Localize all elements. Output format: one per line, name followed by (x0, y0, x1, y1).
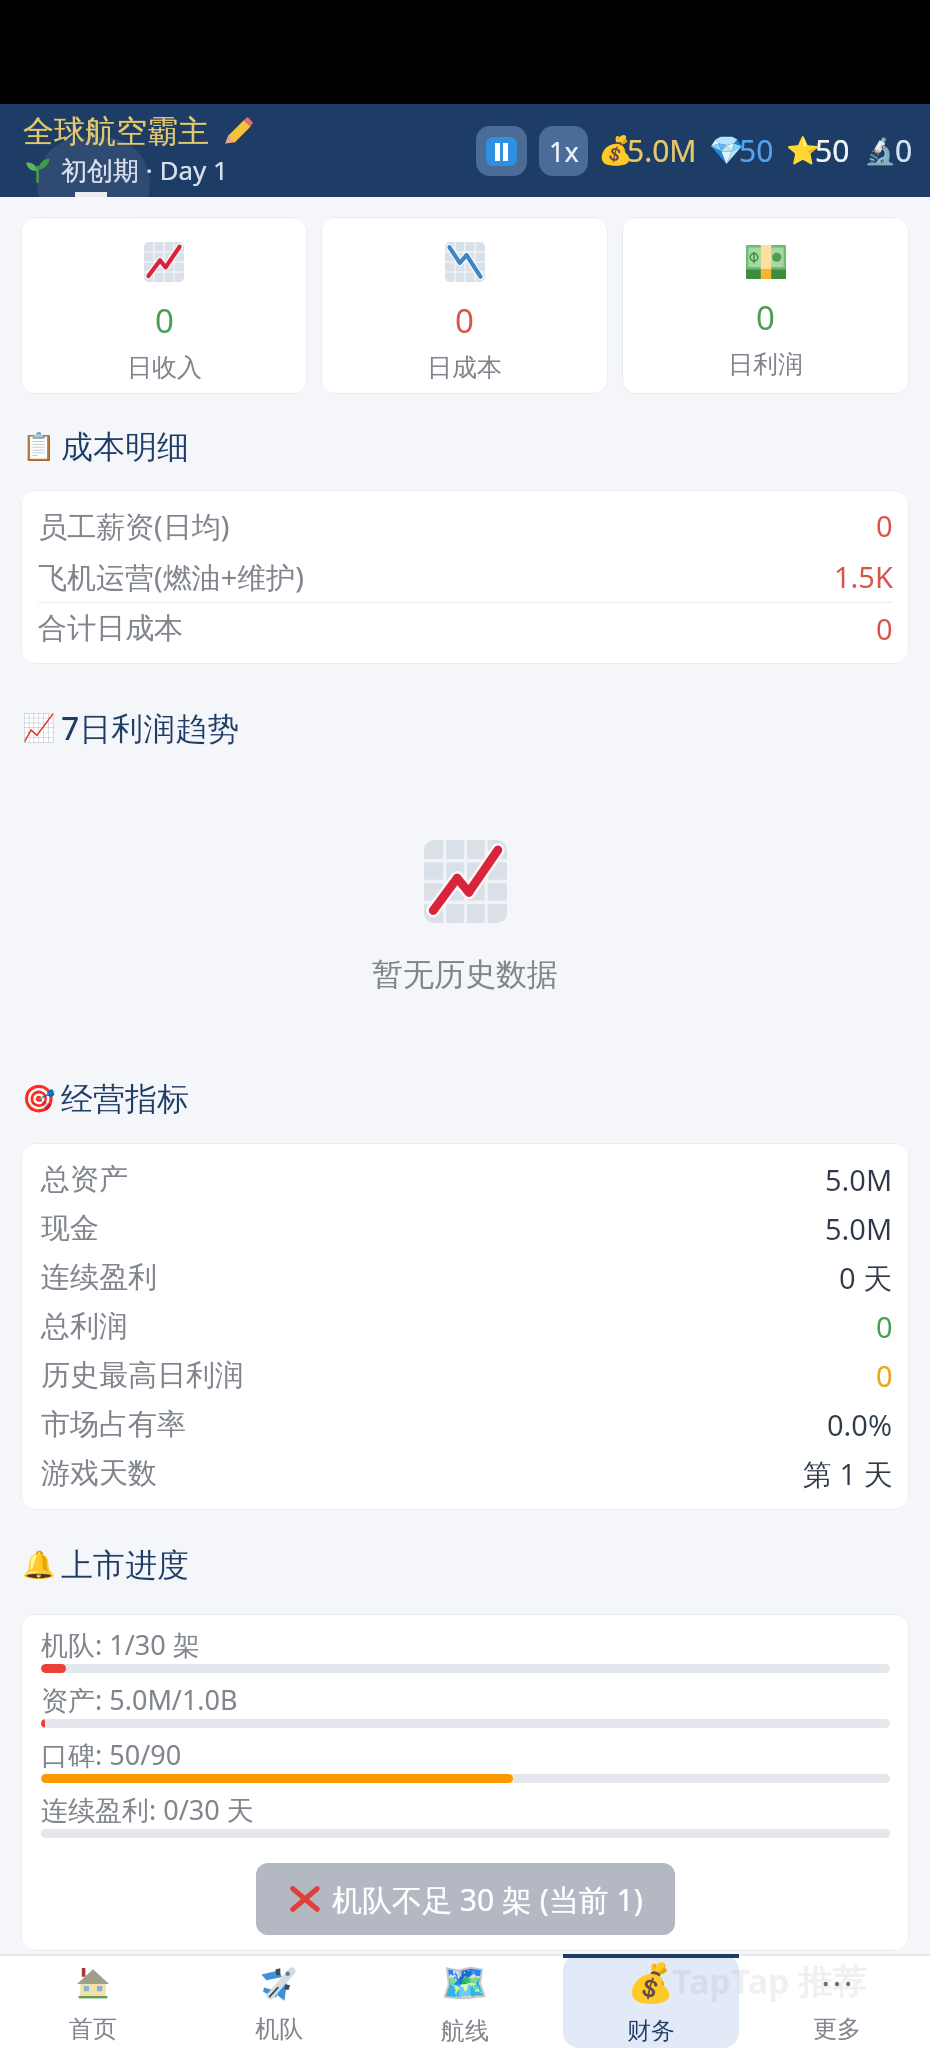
staticText: 首页 (69, 2014, 117, 2044)
staticText: 💰 (627, 1961, 675, 2006)
staticText: 飞机运营(燃油+维护) (38, 557, 304, 597)
staticText: 0 (876, 506, 893, 545)
button[interactable]: 更多 (744, 1954, 930, 2048)
staticText: 暂无历史数据 (372, 955, 558, 994)
staticText: 市场占有率 (41, 1406, 186, 1443)
button[interactable]: 💰 (558, 1954, 744, 2048)
staticText: 0 天 (839, 1258, 893, 1298)
staticText: 更多 (813, 2014, 861, 2044)
staticText: TapTap 推荐 (672, 1958, 867, 2004)
staticText: 7日利润趋势 (61, 706, 240, 750)
staticText: 总利润 (41, 1308, 128, 1345)
staticText: 0 (756, 295, 775, 340)
staticText: 5.0M (825, 1160, 893, 1199)
button[interactable]: 机队 (186, 1954, 372, 2048)
button[interactable]: 首页 (0, 1954, 186, 2048)
staticText: 资产: 5.0M/1.0B (41, 1681, 238, 1718)
staticText: 0.0% (827, 1405, 893, 1444)
button[interactable]: 0 (622, 217, 909, 394)
staticText: 0 (895, 130, 913, 171)
staticText: 现金 (41, 1210, 99, 1247)
staticText: 🔬 (864, 136, 888, 166)
staticText: 📈 (22, 712, 50, 744)
button[interactable]: 🗺 (372, 1954, 558, 2048)
staticText: 0 (876, 1356, 893, 1395)
staticText: 日利润 (728, 349, 803, 380)
button[interactable]: Pause (476, 126, 527, 176)
button[interactable]: 机队不足 30 架 (当前 1) (256, 1863, 675, 1935)
staticText: 成本明细 (61, 427, 189, 467)
staticText: 💰 (598, 134, 624, 167)
staticText: 历史最高日利润 (41, 1357, 244, 1394)
staticText: 游戏天数 (41, 1455, 157, 1492)
staticText: 5.0M (825, 1209, 893, 1248)
staticText: 🗺 (441, 1961, 489, 2006)
staticText: 机队: 1/30 架 (41, 1626, 200, 1663)
staticText: 日收入 (127, 352, 202, 383)
staticText: 🔔 (22, 1549, 50, 1581)
staticText: 0 (876, 609, 893, 648)
staticText: 上市进度 (61, 1545, 189, 1585)
staticText: 航线 (441, 2016, 489, 2046)
staticText: 0 (876, 1307, 893, 1346)
staticText: 全球航空霸主 (23, 112, 209, 151)
staticText: 连续盈利: 0/30 天 (41, 1791, 254, 1828)
staticText: 日成本 (427, 352, 502, 383)
staticText: 0 (455, 298, 474, 343)
staticText: 1x (549, 133, 579, 170)
staticText: 机队不足 30 架 (当前 1) (332, 1879, 643, 1920)
staticText: 1.5K (834, 557, 893, 596)
staticText: 50 (739, 130, 774, 171)
button[interactable]: Game speed 1x (539, 126, 588, 176)
staticText: 合计日成本 (38, 610, 183, 647)
staticText: 初创期 · Day 1 (61, 152, 228, 188)
staticText: ⭐ (786, 135, 811, 167)
staticText: 🎯 (22, 1083, 50, 1115)
staticText: 财务 (627, 2016, 675, 2046)
staticText: 第 1 天 (803, 1454, 893, 1494)
staticText: 📋 (22, 431, 50, 463)
staticText: 50 (815, 130, 850, 171)
staticText: 员工薪资(日均) (38, 506, 230, 546)
staticText: 总资产 (41, 1161, 128, 1198)
staticText: 口碑: 50/90 (41, 1736, 182, 1773)
staticText: 💎 (709, 134, 735, 167)
staticText: 连续盈利 (41, 1259, 157, 1296)
staticText: 机队 (255, 2014, 303, 2044)
button[interactable]: 0 (21, 217, 307, 394)
staticText: 经营指标 (61, 1079, 189, 1119)
staticText: 5.0M (627, 130, 697, 171)
staticText: 0 (155, 298, 174, 343)
button[interactable]: 0 (321, 217, 608, 394)
